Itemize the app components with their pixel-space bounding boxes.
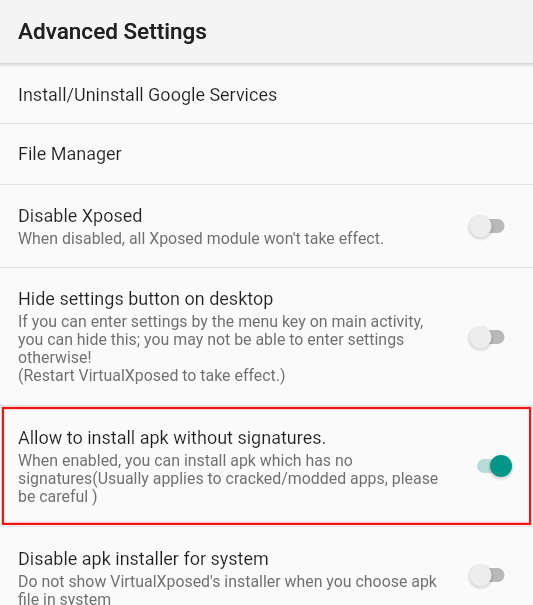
staticText: Disable Xposed — [18, 205, 143, 226]
staticText: Do not show VirtualXposed's installer wh… — [18, 572, 437, 605]
button[interactable]: Hide settings button on desktop — [0, 268, 533, 405]
button[interactable]: Disable Xposed — [0, 185, 533, 267]
button[interactable]: Install/Uninstall Google Services — [0, 68, 533, 123]
button[interactable]: Switch off — [465, 208, 509, 244]
staticText: Install/Uninstall Google Services — [18, 84, 278, 105]
button[interactable]: Advanced Settings — [0, 0, 533, 63]
button[interactable]: Switch on — [465, 448, 509, 484]
staticText: Disable apk installer for system — [18, 548, 269, 569]
staticText: Allow to install apk without signatures. — [18, 427, 327, 448]
staticText: Advanced Settings — [18, 18, 207, 44]
button[interactable]: Switch off — [465, 557, 509, 593]
button[interactable]: Disable apk installer for system — [0, 527, 533, 605]
staticText: When disabled, all Xposed module won't t… — [18, 229, 385, 248]
staticText: If you can enter settings by the menu ke… — [18, 312, 424, 385]
button[interactable]: Switch off — [465, 319, 509, 355]
staticText: When enabled, you can install apk which … — [18, 451, 439, 506]
button[interactable]: Allow to install apk without signatures. — [0, 406, 533, 526]
staticText: File Manager — [18, 143, 122, 164]
staticText: Advanced Settings — [18, 18, 207, 44]
staticText: Hide settings button on desktop — [18, 288, 274, 309]
button[interactable]: File Manager — [0, 124, 533, 184]
